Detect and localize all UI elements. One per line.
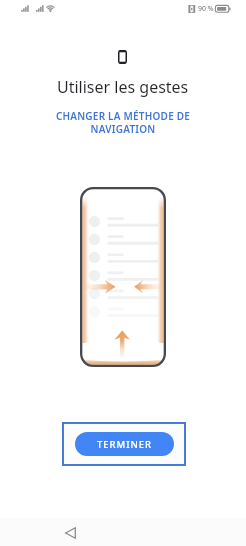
- button[interactable]: CHANGER LA MÉTHODE DE NAVIGATION: [43, 109, 203, 136]
- button[interactable]: Back: [56, 519, 84, 546]
- staticText: TERMINER: [97, 438, 152, 451]
- button[interactable]: TERMINER: [62, 422, 186, 466]
- staticText: Utiliser les gestes: [57, 76, 189, 98]
- staticText: CHANGER LA MÉTHODE DE NAVIGATION: [43, 109, 203, 136]
- staticText: 90 %: [198, 4, 214, 14]
